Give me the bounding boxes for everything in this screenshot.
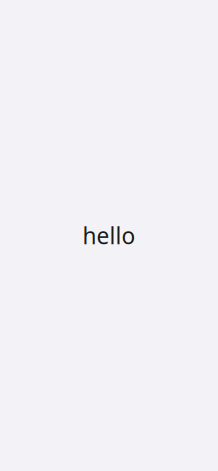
- staticText: hello: [82, 220, 135, 250]
